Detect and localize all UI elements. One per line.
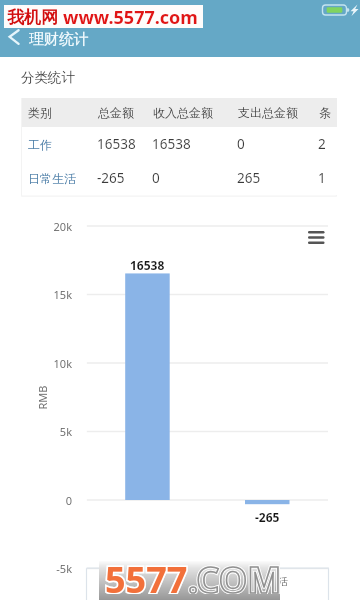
staticText: 日常生活 <box>248 575 288 588</box>
staticText: -5k <box>32 561 72 576</box>
staticText: 日常生活 <box>28 171 76 186</box>
button[interactable]: 日常生活 <box>22 161 337 195</box>
button[interactable]: 工作 <box>22 127 337 161</box>
staticText: 5k <box>32 424 72 439</box>
staticText: 我机网 <box>7 5 63 28</box>
staticText: 15k <box>32 287 72 302</box>
staticText: 2 <box>318 135 326 153</box>
staticText: 1 <box>318 169 326 187</box>
staticText: .COM <box>188 555 282 594</box>
staticText: 分类统计 <box>21 69 75 86</box>
staticText: 支出总金额 <box>238 105 298 120</box>
staticText: 收入总金额 <box>153 105 213 120</box>
staticText: 16538 <box>152 135 191 153</box>
staticText: -265 <box>255 509 280 525</box>
staticText: 总金额 <box>98 105 134 120</box>
staticText: 工作 <box>28 137 52 152</box>
staticText: RMB <box>34 385 49 409</box>
staticText: -265 <box>97 169 125 187</box>
staticText: 20k <box>32 219 72 234</box>
staticText: 理财统计 <box>29 30 89 49</box>
staticText: 工作 <box>138 575 158 588</box>
staticText: 16538 <box>130 257 165 273</box>
staticText: 265 <box>237 169 261 187</box>
button[interactable]: Chart menu <box>305 228 329 248</box>
staticText: 16538 <box>97 135 136 153</box>
staticText: www.5577.com <box>63 5 198 28</box>
staticText: 0 <box>152 169 160 187</box>
staticText: 5577 <box>105 555 188 594</box>
staticText: .COM <box>188 555 282 594</box>
staticText: 0 <box>32 493 72 508</box>
button[interactable]: Back <box>2 24 28 50</box>
staticText: 类别 <box>28 105 52 120</box>
staticText: 条 <box>319 105 331 120</box>
staticText: 5577 <box>105 555 188 594</box>
staticText: 0 <box>237 135 245 153</box>
staticText: 10k <box>32 356 72 371</box>
